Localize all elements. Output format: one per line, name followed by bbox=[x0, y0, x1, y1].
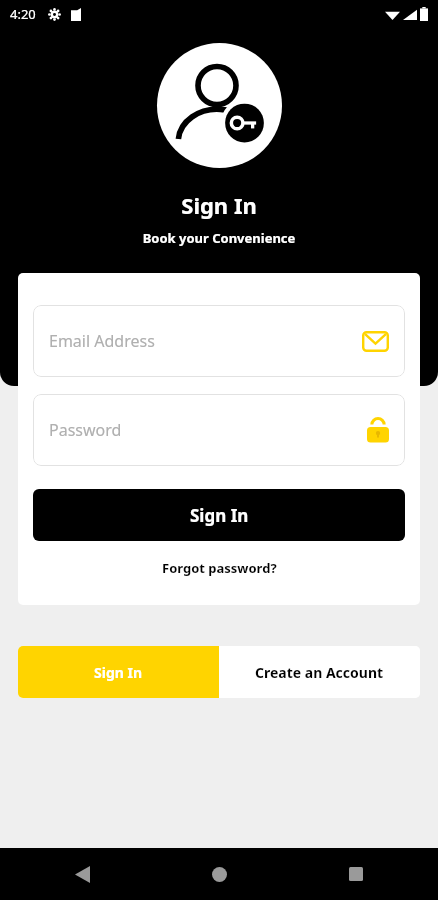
staticText: Email Address bbox=[49, 330, 155, 352]
button[interactable]: Home bbox=[197, 852, 241, 896]
button[interactable]: Sign In bbox=[18, 646, 219, 698]
button[interactable]: Recent apps bbox=[334, 852, 378, 896]
button[interactable]: Forgot password? bbox=[154, 553, 285, 583]
staticText: Password bbox=[49, 419, 122, 441]
button[interactable]: Create an Account bbox=[219, 646, 420, 698]
staticText: Sign In bbox=[0, 190, 438, 220]
staticText: Book your Convenience bbox=[0, 229, 438, 247]
staticText: Forgot password? bbox=[162, 559, 277, 577]
button[interactable]: Email Address bbox=[33, 305, 405, 377]
button[interactable]: Sign In bbox=[33, 489, 405, 541]
staticText: Sign In bbox=[190, 504, 249, 527]
button[interactable]: Back bbox=[60, 852, 104, 896]
button[interactable]: Password bbox=[33, 394, 405, 466]
staticText: Sign In bbox=[94, 663, 143, 682]
staticText: 4:20 bbox=[10, 5, 36, 23]
staticText: Create an Account bbox=[255, 663, 384, 682]
